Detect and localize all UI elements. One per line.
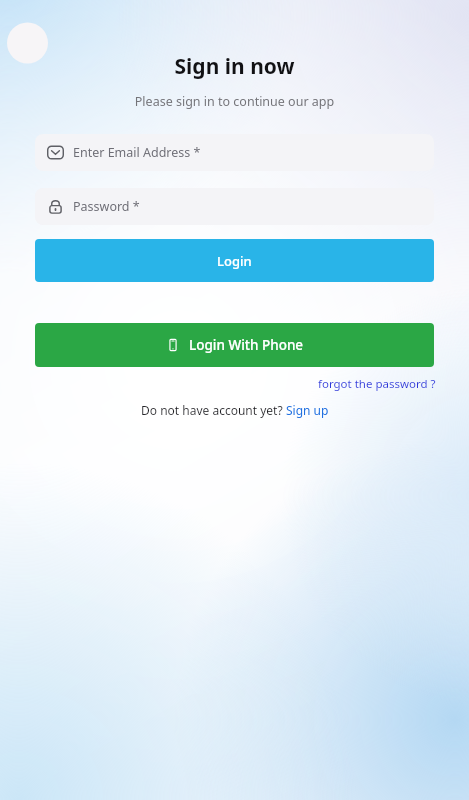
- button[interactable]: Login: [35, 239, 434, 282]
- staticText: Sign up: [286, 402, 329, 418]
- button[interactable]: Password: [35, 188, 434, 225]
- staticText: Login: [217, 252, 252, 270]
- staticText: Sign in now: [0, 52, 469, 81]
- staticText: Enter Email Address *: [73, 144, 201, 161]
- staticText: Login With Phone: [189, 336, 304, 354]
- other: Password: [47, 198, 64, 215]
- button[interactable]: forgot the password ?: [318, 376, 436, 392]
- staticText: forgot the password ?: [318, 376, 436, 392]
- staticText: Please sign in to continue our app: [0, 93, 469, 110]
- staticText: Password *: [73, 198, 140, 215]
- staticText: Do not have account yet?: [141, 402, 286, 418]
- button[interactable]: Email: [35, 134, 434, 171]
- button[interactable]: Sign up: [286, 402, 329, 418]
- button[interactable]: Login With Phone: [35, 323, 434, 367]
- other: Email: [47, 144, 64, 161]
